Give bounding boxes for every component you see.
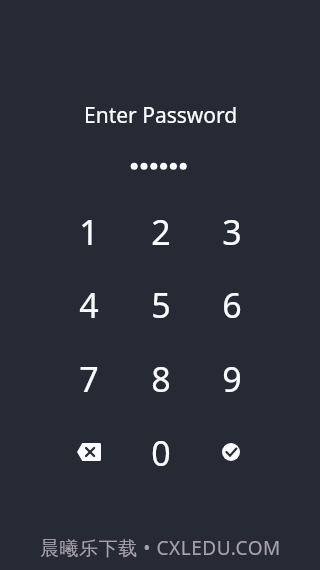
staticText: 7: [79, 356, 99, 402]
staticText: 3: [222, 209, 242, 255]
staticText: 2: [151, 209, 171, 255]
staticText: Enter Password: [84, 101, 238, 130]
button[interactable]: 1: [53, 202, 124, 262]
button[interactable]: 7: [53, 349, 124, 409]
button[interactable]: 0: [125, 423, 196, 483]
staticText: 9: [222, 356, 242, 402]
button[interactable]: 9: [196, 349, 267, 409]
staticText: 4: [79, 282, 99, 328]
button[interactable]: 6: [196, 275, 267, 335]
button[interactable]: 3: [196, 202, 267, 262]
button[interactable]: 4: [53, 275, 124, 335]
staticText: 晨曦乐下载 • CXLEDU.COM: [40, 535, 281, 561]
staticText: 0: [151, 430, 171, 476]
button[interactable]: 8: [125, 349, 196, 409]
staticText: 5: [151, 282, 171, 328]
button[interactable]: Backspace: [53, 422, 124, 482]
button[interactable]: 5: [125, 275, 196, 335]
button[interactable]: Confirm: [195, 422, 266, 482]
staticText: 6: [222, 282, 242, 328]
staticText: 8: [151, 356, 171, 402]
button[interactable]: 2: [125, 202, 196, 262]
staticText: 1: [79, 209, 99, 255]
